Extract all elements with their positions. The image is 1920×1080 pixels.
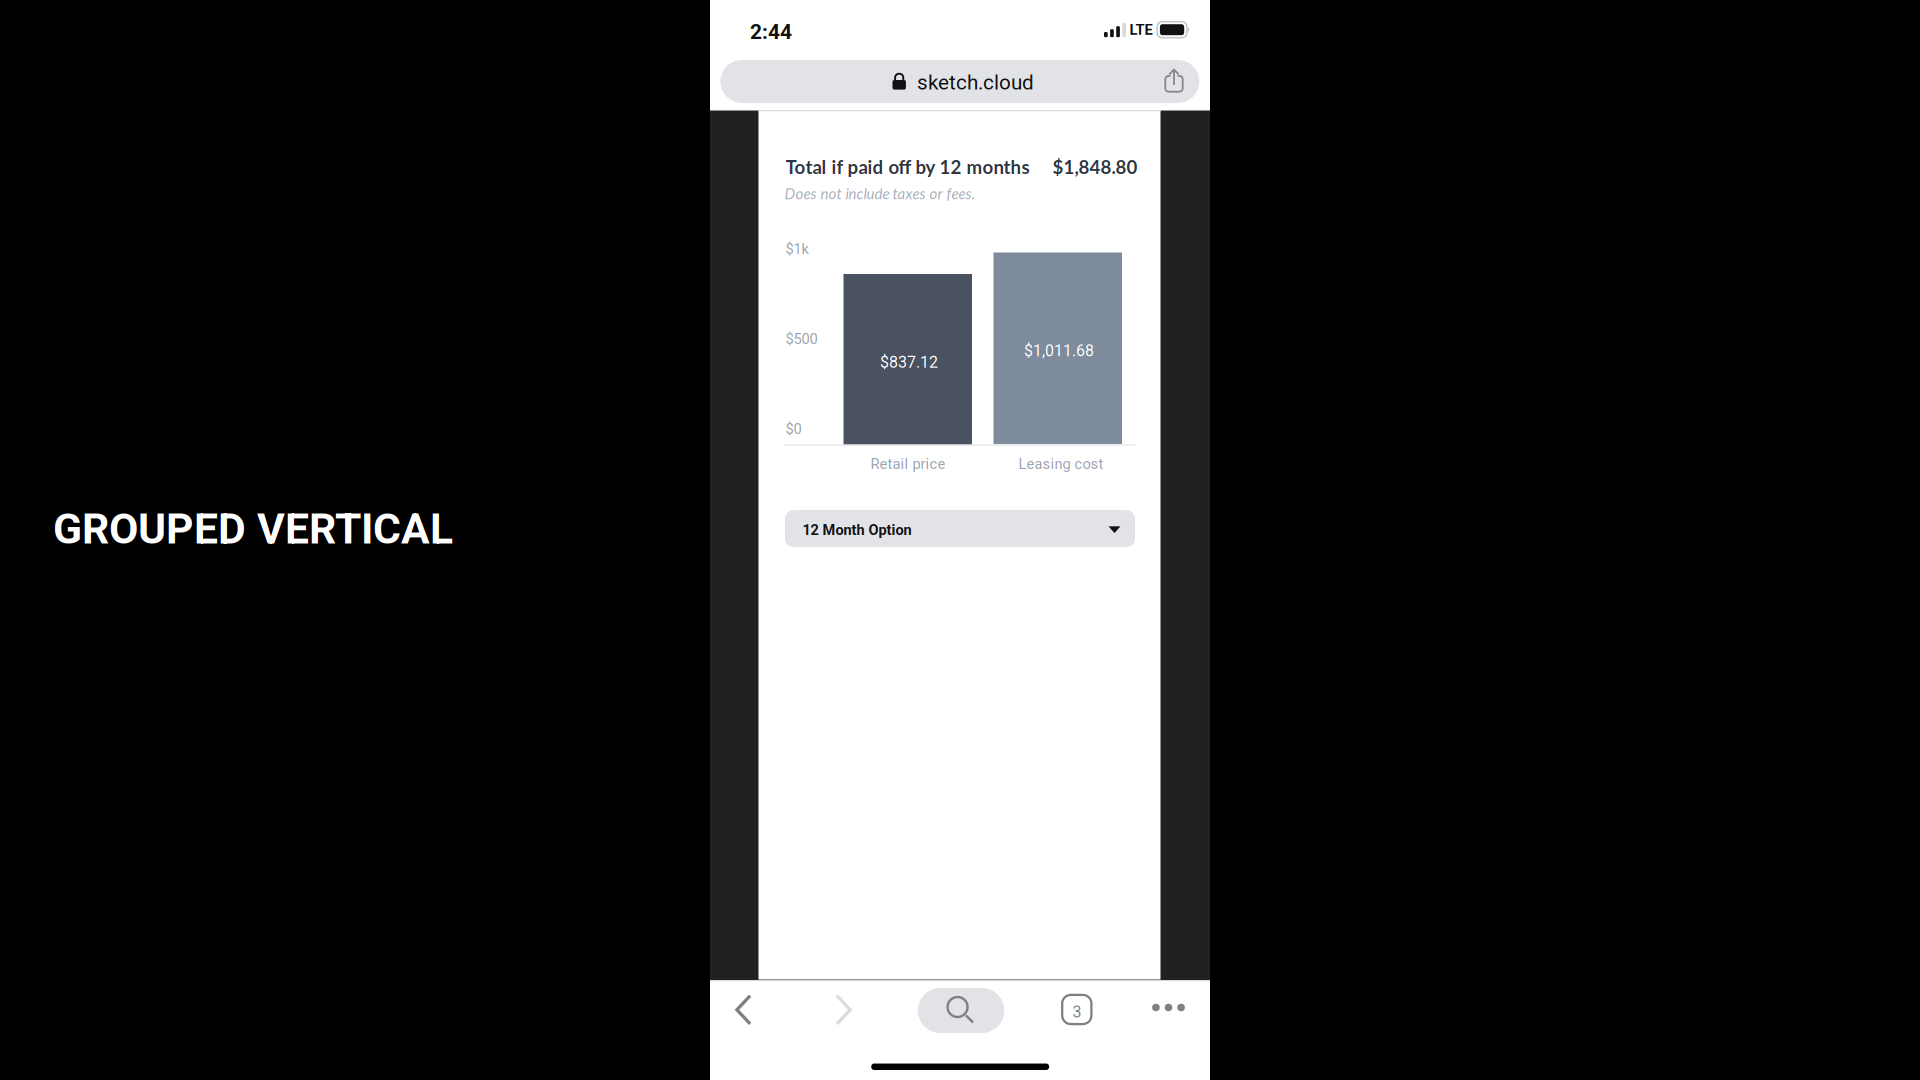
button[interactable]: Back — [721, 990, 765, 1030]
staticText: $1k — [785, 240, 808, 258]
button[interactable]: sketch.cloud — [720, 60, 1199, 103]
staticText: GROUPED VERTICAL — [53, 504, 453, 554]
staticText: Retail price — [870, 455, 945, 473]
staticText: $837.12 — [880, 353, 938, 372]
staticText: 2:44 — [750, 19, 792, 44]
staticText: $1,848.80 — [1052, 155, 1137, 178]
staticText: $500 — [785, 330, 817, 348]
staticText: Does not include taxes or fees. — [784, 184, 975, 203]
staticText: LTE — [1129, 21, 1152, 38]
staticText: Leasing cost — [1018, 455, 1103, 473]
button[interactable]: Search — [918, 988, 1004, 1033]
button[interactable]: Tabs — [1057, 990, 1097, 1030]
staticText: Total if paid off by 12 months — [785, 155, 1029, 178]
button[interactable]: More — [1148, 988, 1188, 1026]
staticText: $0 — [785, 420, 801, 438]
button[interactable]: Forward — [821, 990, 865, 1030]
button[interactable]: 12 Month Option — [785, 510, 1135, 547]
staticText: 12 Month Option — [802, 521, 911, 538]
staticText: 3 — [1073, 1003, 1082, 1021]
staticText: $1,011.68 — [1024, 341, 1094, 360]
staticText: sketch.cloud — [917, 70, 1034, 94]
